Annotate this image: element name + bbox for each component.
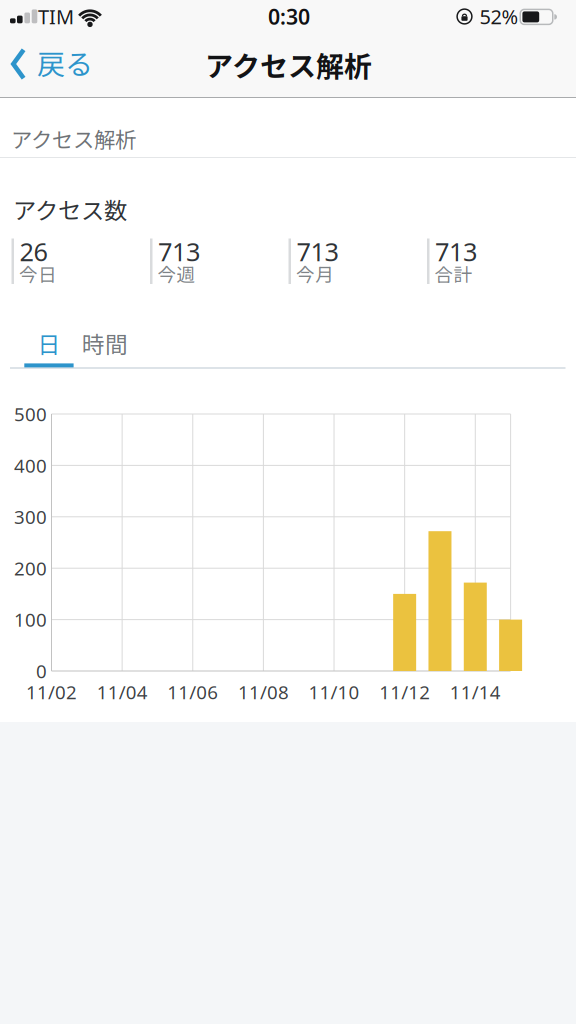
staticText: 52% [479,3,518,30]
staticText: 今週 [157,260,195,287]
staticText: 100 [14,607,47,632]
staticText: 200 [14,556,47,581]
staticText: アクセス数 [13,192,127,226]
staticText: TIM [38,3,74,30]
staticText: アクセス解析 [11,123,136,154]
staticText: 時間 [82,327,128,359]
staticText: 今月 [296,260,334,287]
staticText: 日 [37,327,60,359]
staticText: 11/06 [167,680,218,704]
staticText: 11/10 [308,680,359,704]
staticText: アクセス解析 [205,44,372,85]
staticText: 300 [14,504,47,529]
staticText: 11/14 [450,680,501,704]
staticText: 今日 [19,260,57,287]
staticText: 0 [36,659,47,683]
button[interactable]: 日 [24,325,74,361]
staticText: 11/12 [379,680,430,704]
staticText: 0:30 [268,2,310,31]
staticText: 戻る [37,42,93,83]
staticText: 713 [296,235,338,268]
staticText: 26 [19,235,47,268]
staticText: 713 [435,235,477,268]
staticText: 713 [158,235,200,268]
staticText: 11/02 [26,680,77,704]
button[interactable]: 時間 [75,325,135,361]
staticText: 合計 [434,260,472,287]
staticText: 500 [14,402,47,426]
staticText: 11/08 [238,680,289,704]
staticText: 400 [14,453,47,478]
staticText: 11/04 [97,680,148,704]
button[interactable]: 戻る [11,42,123,86]
